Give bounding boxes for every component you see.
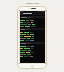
button[interactable] (20, 42, 45, 44)
button[interactable]: Home (31, 65, 34, 68)
button[interactable] (20, 16, 45, 18)
button[interactable] (20, 28, 45, 30)
button[interactable]: Back (20, 13, 22, 15)
